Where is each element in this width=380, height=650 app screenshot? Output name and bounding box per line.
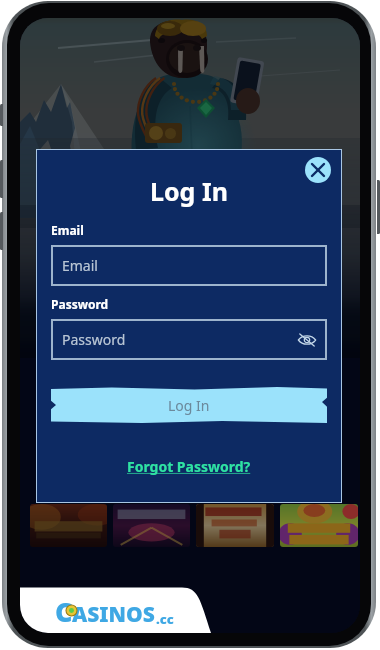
staticText: Password [51,296,109,312]
staticText: Log In [150,174,228,208]
staticText: .cc [156,610,174,628]
button[interactable]: Close [305,157,331,183]
staticText: ASINOS [72,600,155,629]
button[interactable]: Email [51,245,327,286]
button[interactable] [280,504,358,547]
staticText: Email [62,256,98,275]
button[interactable]: Password [51,319,327,360]
staticText: C [55,593,73,630]
button[interactable] [196,504,274,547]
staticText: Password [62,330,126,349]
staticText: Log In [168,396,210,415]
button[interactable]: Log In [51,387,327,423]
button[interactable] [113,504,190,547]
button[interactable]: Show password [297,330,317,350]
button[interactable]: Forgot Password? [127,457,251,476]
button[interactable] [30,504,107,547]
staticText: Email [51,222,84,238]
